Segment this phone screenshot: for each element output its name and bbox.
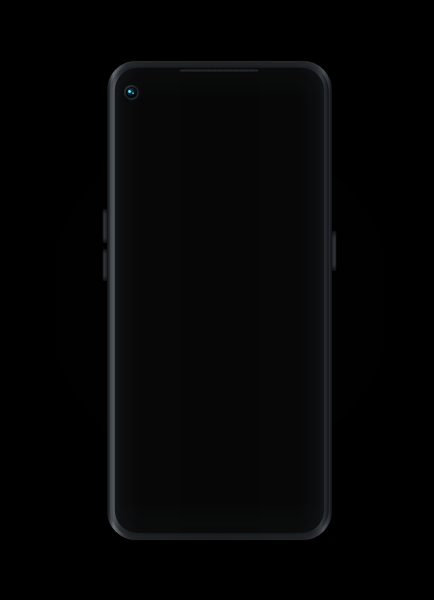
button[interactable]: Front camera xyxy=(124,85,139,100)
button[interactable]: Volume up xyxy=(102,209,109,243)
button[interactable]: Power xyxy=(330,231,337,271)
button[interactable]: Volume down xyxy=(102,249,109,281)
button[interactable]: Phone display, screen off xyxy=(115,69,324,532)
